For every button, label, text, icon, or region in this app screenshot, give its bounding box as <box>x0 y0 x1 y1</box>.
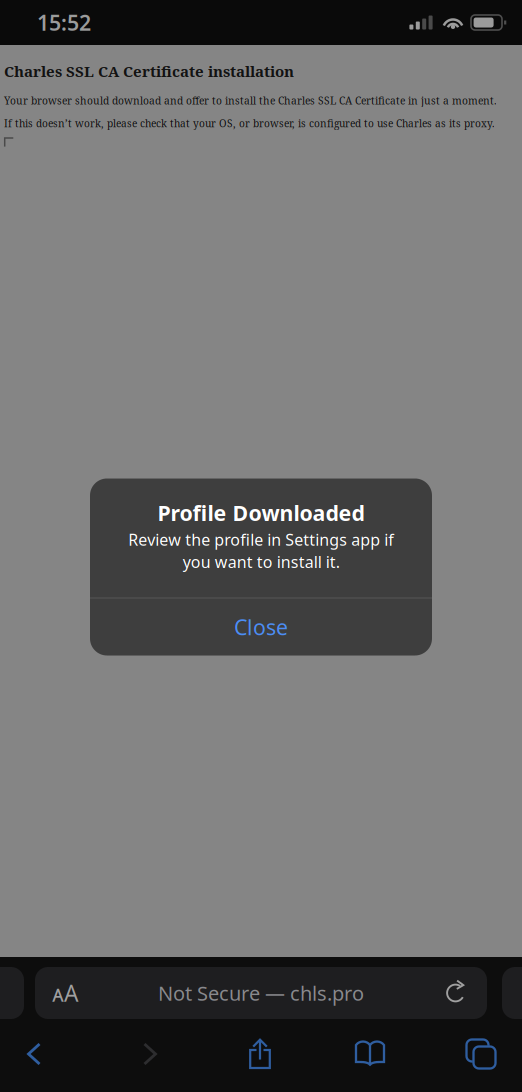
button[interactable]: Bookmarks <box>335 1030 405 1078</box>
button[interactable]: Share <box>225 1030 295 1078</box>
button[interactable]: Tabs <box>446 1030 516 1078</box>
staticText: Review the profile in Settings app if yo… <box>128 529 394 572</box>
button[interactable]: Close <box>90 598 432 655</box>
staticText: Close <box>234 613 288 641</box>
button[interactable]: Back <box>0 1030 69 1078</box>
staticText: Profile Downloaded <box>157 498 364 527</box>
staticText: Not Secure — chls.pro <box>158 980 364 1006</box>
staticText: ᴀA <box>52 978 78 1008</box>
staticText: If this doesn’t work, please check that … <box>4 116 495 130</box>
staticText: Your browser should download and offer t… <box>4 93 497 107</box>
staticText: 15:52 <box>37 8 91 37</box>
button[interactable]: Forward <box>115 1030 185 1078</box>
button[interactable]: ᴀA <box>35 967 487 1019</box>
staticText: Charles SSL CA Certificate installation <box>4 61 294 81</box>
